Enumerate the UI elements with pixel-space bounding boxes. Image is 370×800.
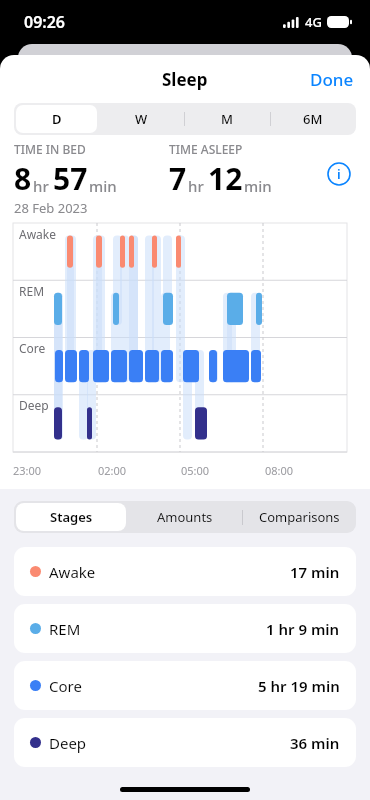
staticText: Awake (49, 562, 96, 582)
staticText: REM (19, 283, 45, 299)
staticText: 36 min (290, 733, 340, 753)
button[interactable]: Amounts (128, 501, 242, 533)
button[interactable]: Information (322, 157, 356, 191)
staticText: TIME ASLEEP (169, 141, 243, 157)
staticText: 08:00 (265, 463, 294, 478)
staticText: 57 (53, 158, 88, 199)
staticText: W (135, 110, 148, 128)
button[interactable]: M (184, 103, 270, 135)
staticText: 8 (14, 158, 32, 199)
staticText: Deep (19, 397, 49, 413)
staticText: 09:26 (24, 11, 66, 33)
staticText: i (337, 165, 341, 183)
button[interactable]: 6M (270, 103, 356, 135)
button[interactable]: Awake (14, 547, 356, 596)
button[interactable]: Core (14, 661, 356, 710)
staticText: 12 (208, 158, 243, 199)
staticText: REM (49, 619, 81, 639)
staticText: 1 hr 9 min (266, 619, 340, 639)
staticText: Awake (19, 226, 57, 242)
staticText: Sleep (162, 68, 208, 91)
button[interactable]: W (99, 103, 184, 135)
staticText: Done (310, 68, 354, 91)
staticText: min (244, 176, 272, 196)
staticText: Deep (49, 733, 87, 753)
staticText: 4G (305, 13, 322, 31)
staticText: 28 Feb 2023 (14, 199, 88, 217)
staticText: M (221, 110, 233, 128)
button[interactable]: Comparisons (242, 501, 356, 533)
staticText: 23:00 (13, 463, 42, 478)
button[interactable]: Done (294, 60, 370, 99)
staticText: Stages (50, 508, 93, 526)
staticText: 17 min (290, 562, 340, 582)
staticText: hr (188, 176, 204, 196)
staticText: Core (49, 676, 82, 696)
staticText: hr (33, 176, 49, 196)
staticText: 7 (169, 158, 187, 199)
staticText: D (52, 110, 62, 128)
staticText: 05:00 (181, 463, 210, 478)
staticText: 02:00 (98, 463, 127, 478)
staticText: Comparisons (259, 508, 340, 526)
staticText: TIME IN BED (14, 141, 86, 157)
staticText: 6M (303, 110, 323, 128)
staticText: min (89, 176, 117, 196)
button[interactable]: Deep (14, 718, 356, 767)
button[interactable]: D (14, 103, 99, 135)
button[interactable]: REM (14, 604, 356, 653)
staticText: 5 hr 19 min (258, 676, 340, 696)
staticText: Amounts (157, 508, 213, 526)
button[interactable]: Stages (14, 501, 128, 533)
staticText: Core (19, 340, 46, 356)
